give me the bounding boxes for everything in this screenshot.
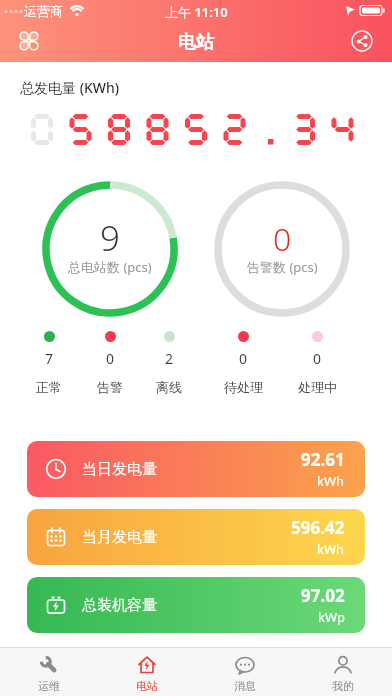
button[interactable]: 总装机容量	[27, 577, 365, 633]
button[interactable]: 运维	[0, 648, 98, 696]
staticText: kWh	[317, 540, 345, 558]
staticText: 92.61	[301, 448, 345, 471]
staticText: 0	[313, 349, 322, 368]
staticText: 告警	[97, 379, 123, 395]
staticText: 上午 11:10	[165, 3, 228, 21]
staticText: 0	[273, 217, 292, 261]
staticText: kWp	[318, 608, 345, 626]
button[interactable]: 我的	[294, 648, 392, 696]
staticText: 总装机容量	[82, 596, 157, 615]
button[interactable]: 电站	[98, 648, 196, 696]
staticText: 我的	[332, 679, 354, 693]
staticText: kWh	[317, 472, 345, 490]
staticText: 总发电量 (KWh)	[20, 78, 120, 97]
staticText: 运维	[38, 679, 60, 693]
staticText: 待处理	[224, 379, 263, 395]
staticText: 消息	[234, 679, 256, 693]
staticText: 离线	[156, 379, 182, 395]
button[interactable]	[20, 32, 38, 50]
staticText: 正常	[36, 379, 62, 395]
staticText: 运营商	[24, 3, 63, 19]
staticText: 总电站数 (pcs)	[68, 258, 152, 276]
staticText: 0	[106, 349, 115, 368]
staticText: 电站	[136, 679, 158, 693]
staticText: 7	[45, 349, 54, 368]
staticText: 告警数 (pcs)	[247, 258, 318, 276]
staticText: 97.02	[301, 584, 345, 607]
staticText: 596.42	[291, 516, 345, 539]
staticText: 当月发电量	[82, 528, 157, 547]
staticText: 当日发电量	[82, 460, 157, 479]
button[interactable]	[351, 30, 373, 52]
button[interactable]: 当日发电量	[27, 441, 365, 497]
staticText: 处理中	[298, 379, 337, 395]
staticText: 电站	[178, 31, 214, 54]
staticText: 9	[100, 214, 120, 262]
staticText: 2	[165, 349, 174, 368]
button[interactable]: 消息	[196, 648, 294, 696]
staticText: 0	[239, 349, 248, 368]
button[interactable]: 当月发电量	[27, 509, 365, 565]
